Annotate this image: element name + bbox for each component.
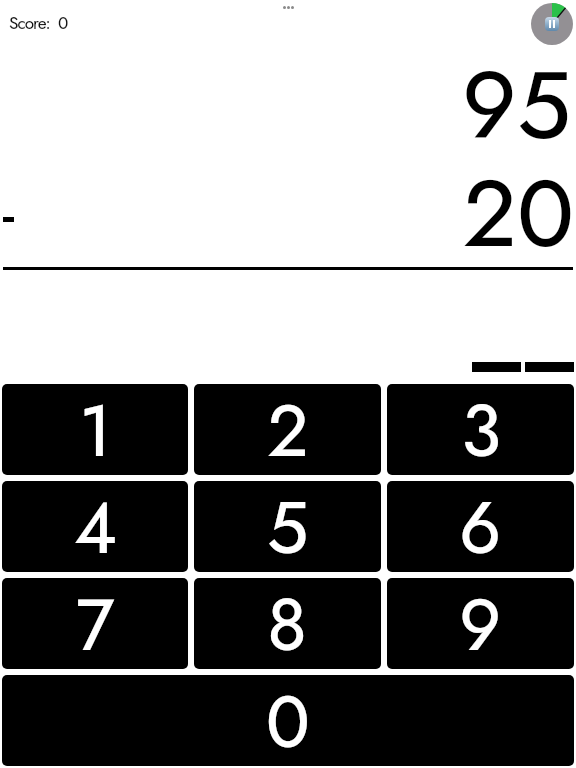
staticText: 95 bbox=[0, 37, 571, 173]
button[interactable]: Pause bbox=[531, 3, 573, 45]
button[interactable]: 5 bbox=[194, 481, 381, 572]
staticText: Score: 0 bbox=[9, 11, 68, 36]
button[interactable]: 3 bbox=[387, 384, 574, 475]
button[interactable]: More options bbox=[276, 0, 300, 14]
button[interactable]: 4 bbox=[2, 481, 188, 572]
staticText: 20 bbox=[0, 145, 574, 281]
button[interactable]: 2 bbox=[194, 384, 381, 475]
staticText: 1 bbox=[79, 384, 112, 470]
staticText: 8 bbox=[267, 578, 308, 664]
staticText: 5 bbox=[267, 481, 309, 567]
staticText: 9 bbox=[459, 578, 502, 664]
staticText: 3 bbox=[461, 384, 501, 470]
staticText: 6 bbox=[459, 481, 502, 567]
staticText: 7 bbox=[76, 578, 115, 664]
staticText: 0 bbox=[266, 675, 310, 761]
button[interactable]: 1 bbox=[2, 384, 188, 475]
button[interactable]: 0 bbox=[2, 675, 574, 766]
button[interactable]: 9 bbox=[387, 578, 574, 669]
staticText: 2 bbox=[267, 384, 309, 470]
button[interactable]: 8 bbox=[194, 578, 381, 669]
button[interactable]: 7 bbox=[2, 578, 188, 669]
button[interactable]: 6 bbox=[387, 481, 574, 572]
staticText: 4 bbox=[74, 481, 117, 567]
